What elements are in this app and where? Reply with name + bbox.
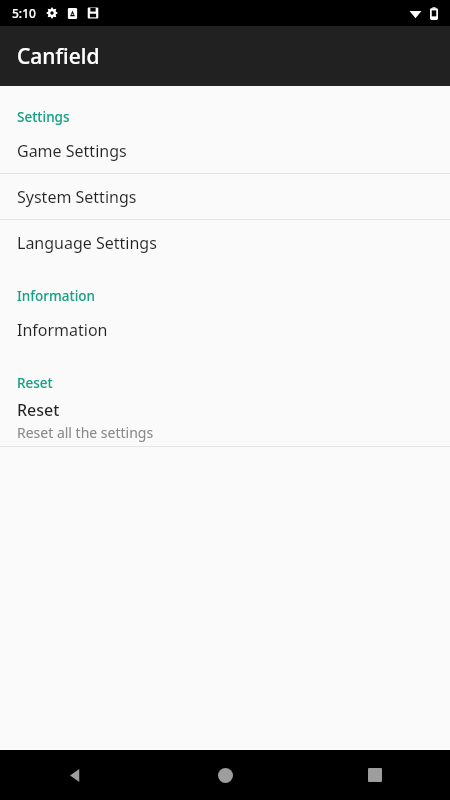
staticText: Reset [17, 374, 53, 392]
staticText: 5:10 [12, 5, 36, 21]
staticText: Canfield [17, 42, 100, 71]
button[interactable]: Information [0, 307, 450, 352]
button[interactable]: Game Settings [0, 128, 450, 173]
button[interactable]: Home [150, 750, 300, 800]
button[interactable]: Recent apps [300, 750, 450, 800]
staticText: System Settings [17, 186, 137, 208]
staticText: Game Settings [17, 140, 127, 162]
staticText: Reset all the settings [17, 423, 154, 442]
button[interactable]: Language Settings [0, 220, 450, 265]
button[interactable]: System Settings [0, 174, 450, 219]
staticText: Reset [17, 399, 60, 421]
staticText: Information [17, 319, 108, 341]
staticText: Language Settings [17, 232, 157, 254]
button[interactable]: Reset [0, 394, 450, 446]
staticText: Settings [17, 108, 70, 126]
button[interactable]: Back [0, 750, 150, 800]
staticText: Information [17, 287, 96, 305]
